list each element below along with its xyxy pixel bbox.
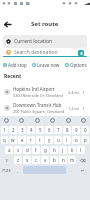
staticText: Current location — [14, 38, 53, 45]
button[interactable]: z — [14, 156, 22, 164]
button[interactable]: ?123 — [1, 166, 12, 174]
button[interactable]: e — [18, 136, 26, 144]
staticText: m — [70, 157, 75, 163]
button[interactable]: b — [50, 156, 58, 164]
staticText: o — [75, 137, 78, 143]
button[interactable]: r — [27, 136, 35, 144]
button[interactable]: . — [67, 166, 76, 174]
staticText: n — [62, 157, 65, 163]
staticText: 200 Public Square, Cleveland — [13, 109, 65, 114]
staticText: Hopkins Intl Airport — [13, 86, 55, 92]
button[interactable]: w — [9, 136, 17, 144]
staticText: l — [80, 147, 82, 153]
staticText: q — [3, 137, 6, 143]
button[interactable]: s — [14, 146, 22, 154]
button[interactable]: 7 — [54, 126, 62, 134]
staticText: 1 — [3, 127, 6, 133]
button[interactable]: l — [77, 146, 85, 154]
button[interactable]: More options — [81, 90, 86, 95]
button[interactable]: Current location — [6, 35, 84, 48]
staticText: s — [17, 147, 20, 153]
staticText: ?123 — [2, 168, 11, 173]
button[interactable]: t — [36, 136, 44, 144]
button[interactable]: ↵ — [77, 166, 89, 174]
button[interactable]: Leave now — [32, 62, 60, 68]
button[interactable]: n — [59, 156, 67, 164]
staticText: u — [57, 137, 60, 143]
button[interactable]: 1 — [1, 126, 8, 134]
staticText: k — [71, 147, 74, 153]
staticText: , — [17, 168, 19, 173]
button[interactable]: x — [23, 156, 31, 164]
button[interactable]: Keyboard action — [81, 118, 86, 123]
button[interactable]: Search destination — [6, 48, 84, 57]
button[interactable]: , — [13, 166, 22, 174]
button[interactable]: 8 — [63, 126, 71, 134]
button[interactable]: g — [41, 146, 49, 154]
staticText: z — [17, 157, 20, 163]
staticText: Leave now — [37, 62, 60, 68]
staticText: e — [21, 137, 24, 143]
button[interactable]: Keyboard action — [50, 118, 55, 123]
staticText: h — [53, 147, 56, 153]
button[interactable]: Keyboard action — [4, 118, 9, 123]
staticText: ⇧ — [5, 158, 9, 163]
button[interactable]: d — [23, 146, 31, 154]
staticText: j — [62, 147, 64, 153]
button[interactable]: 6 — [45, 126, 53, 134]
button[interactable]: m — [68, 156, 76, 164]
button[interactable]: 2 — [9, 126, 17, 134]
button[interactable]: Options — [65, 62, 87, 68]
button[interactable]: 4 — [27, 126, 35, 134]
staticText: 5300 Riverside Dr, Cleveland — [13, 93, 63, 98]
button[interactable]: y — [45, 136, 53, 144]
staticText: g — [44, 147, 47, 153]
button[interactable]: c — [32, 156, 40, 164]
staticText: . — [71, 168, 73, 173]
staticText: f — [35, 147, 37, 153]
staticText: 2 — [12, 127, 15, 133]
button[interactable]: Keyboard action — [19, 118, 24, 123]
button[interactable]: Keyboard action — [66, 118, 71, 123]
staticText: w — [11, 137, 15, 143]
button[interactable]: h — [50, 146, 58, 154]
staticText: 1.2 mi — [68, 106, 79, 111]
button[interactable]: 5 — [36, 126, 44, 134]
button[interactable]: 3 — [18, 126, 26, 134]
button[interactable]: Downtown Transit Hub — [4, 100, 86, 116]
button[interactable]: k — [68, 146, 76, 154]
staticText: r — [30, 137, 32, 143]
staticText: 3 — [21, 127, 24, 133]
staticText: v — [44, 157, 47, 163]
button[interactable]: Keyboard action — [35, 118, 40, 123]
staticText: 7 — [57, 127, 60, 133]
staticText: Add stop — [8, 62, 27, 68]
button[interactable]: p — [81, 136, 89, 144]
button[interactable]: j — [59, 146, 67, 154]
button[interactable]: Hopkins Intl Airport — [4, 84, 86, 100]
staticText: y — [48, 137, 51, 143]
button[interactable]: a — [5, 146, 13, 154]
button[interactable]: 9 — [72, 126, 80, 134]
button[interactable]: 0 — [81, 126, 89, 134]
staticText: t — [39, 137, 41, 143]
staticText: b — [53, 157, 56, 163]
button[interactable]: u — [54, 136, 62, 144]
staticText: a — [8, 147, 11, 153]
staticText: Options — [70, 62, 87, 68]
button[interactable]: i — [63, 136, 71, 144]
staticText: Set route — [31, 20, 59, 28]
staticText: 5 — [39, 127, 42, 133]
button[interactable]: ⇧ — [1, 156, 13, 164]
button[interactable]: o — [72, 136, 80, 144]
button[interactable]: More options — [81, 106, 86, 111]
button[interactable]: Add stop — [3, 62, 27, 68]
staticText: 3.4 mi — [68, 90, 79, 95]
button[interactable]: ⌫ — [77, 156, 89, 164]
button[interactable]: f — [32, 146, 40, 154]
button[interactable]: Back — [2, 19, 12, 29]
button[interactable]: q — [1, 136, 8, 144]
button[interactable]: Choose on map — [78, 50, 84, 56]
button[interactable]: v — [41, 156, 49, 164]
